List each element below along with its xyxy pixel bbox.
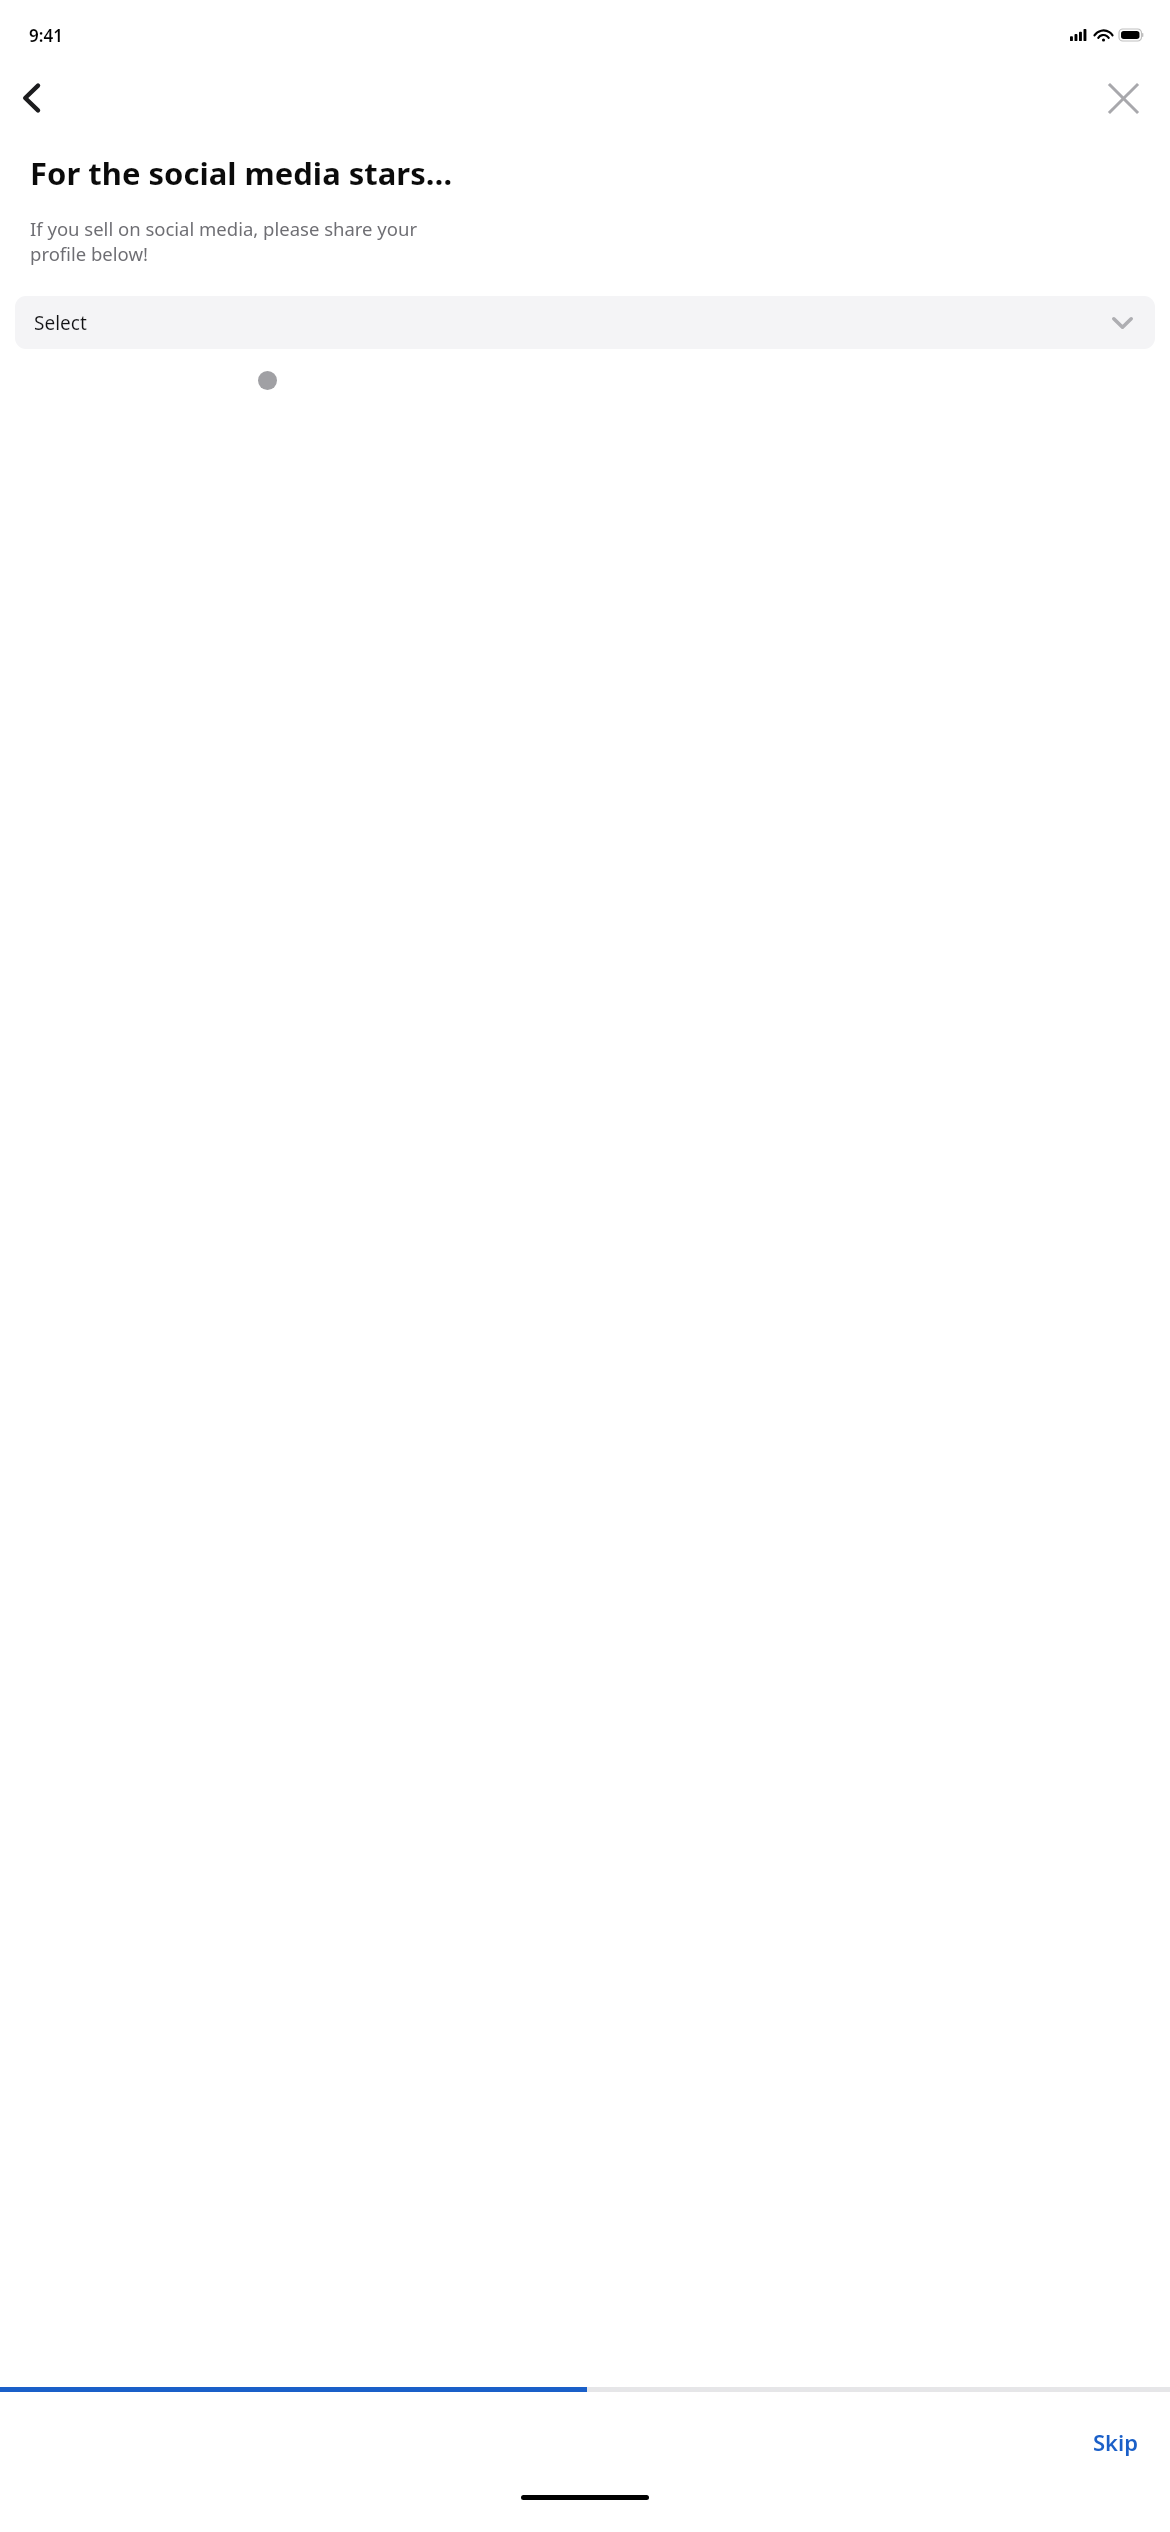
staticText: 9:41 bbox=[29, 24, 63, 47]
button[interactable]: Select bbox=[15, 296, 1155, 349]
staticText: Select bbox=[34, 310, 87, 336]
staticText: Skip bbox=[1092, 2427, 1138, 2457]
staticText: For the social media stars… bbox=[30, 152, 1146, 194]
button[interactable]: Back bbox=[6, 72, 58, 124]
staticText: If you sell on social media, please shar… bbox=[30, 216, 1146, 267]
button[interactable]: Skip bbox=[1082, 2419, 1148, 2465]
button[interactable]: Close bbox=[1096, 71, 1150, 125]
